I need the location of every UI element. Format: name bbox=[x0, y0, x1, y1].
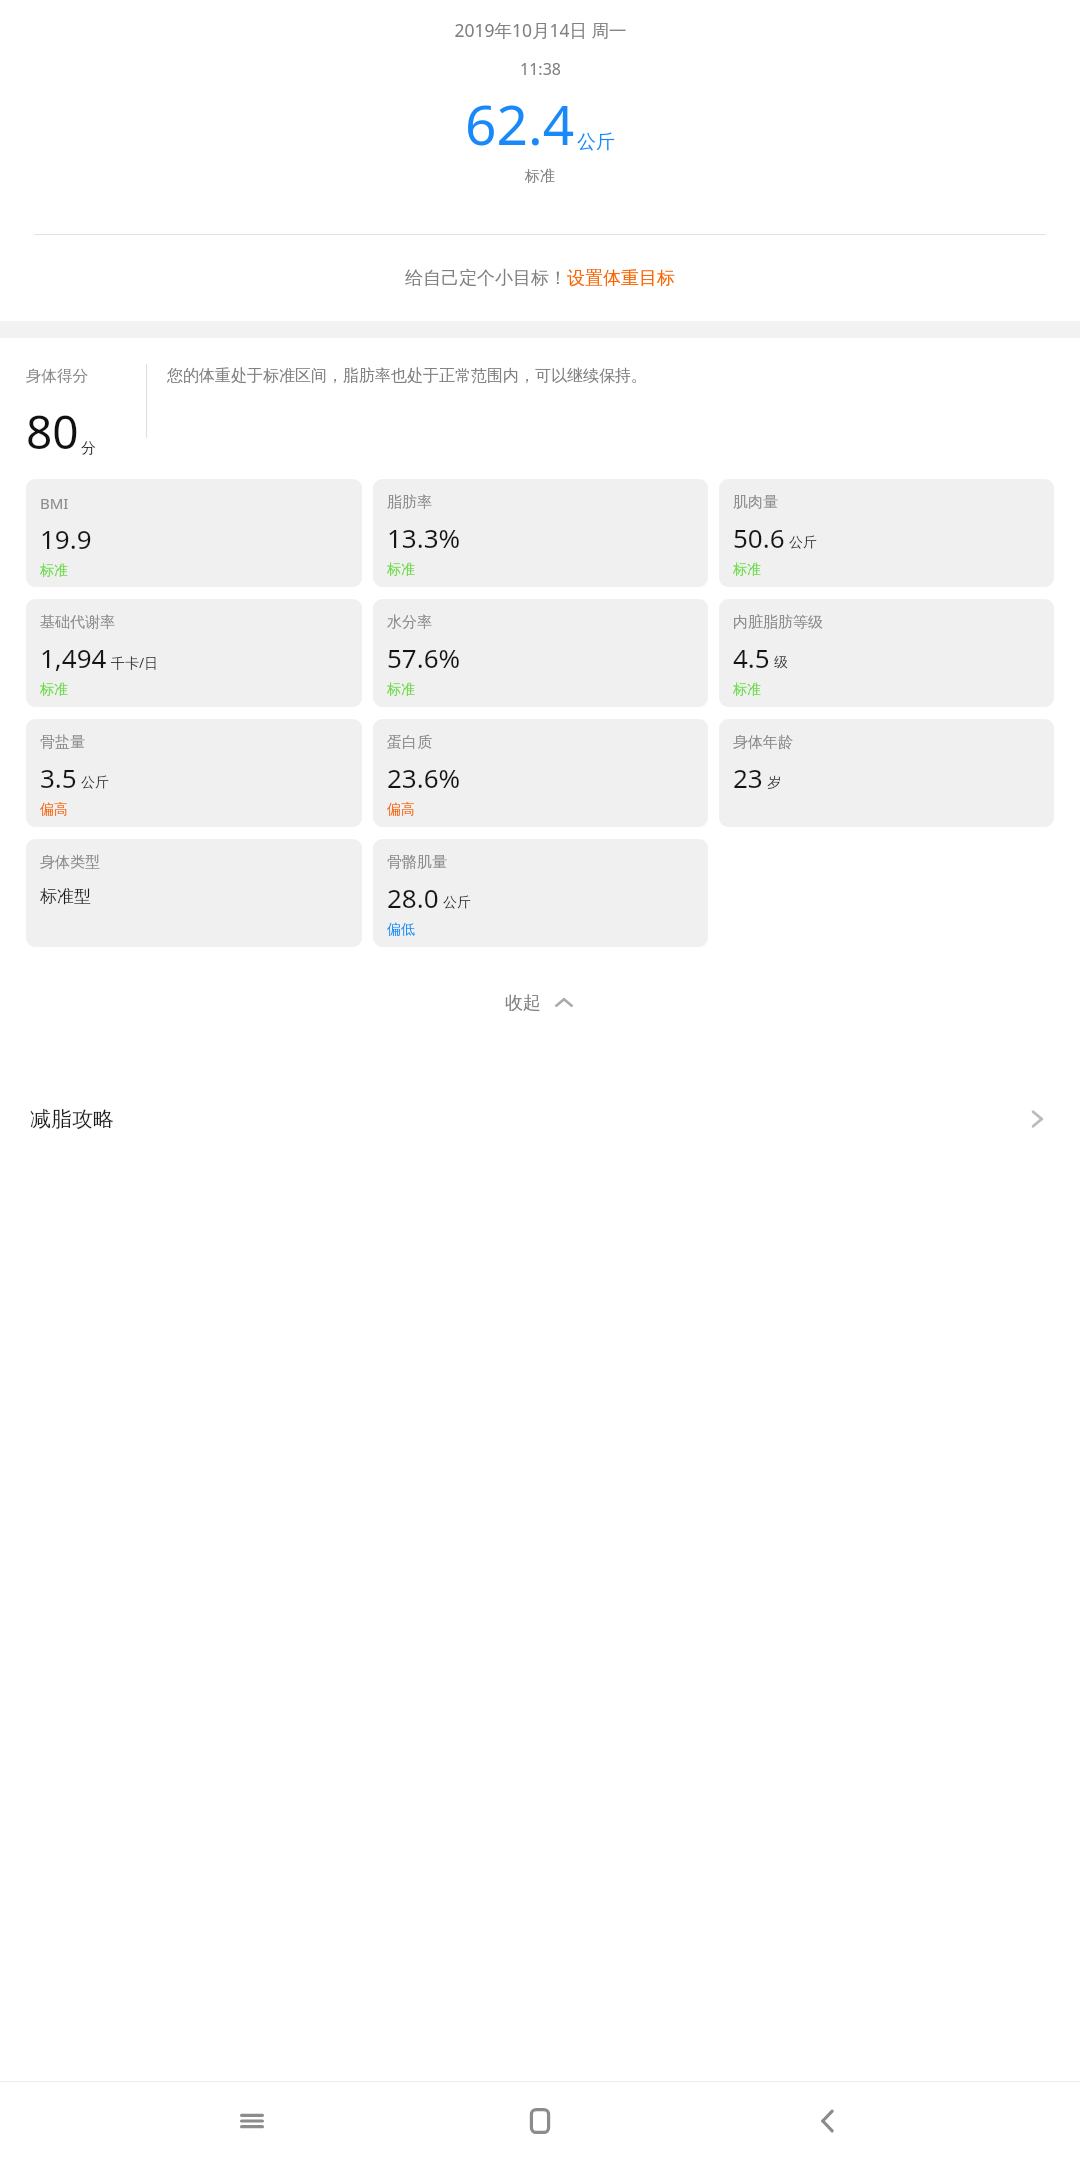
staticText: 标准 bbox=[525, 167, 555, 186]
staticText: 水分率 bbox=[387, 613, 432, 632]
staticText: 标准 bbox=[387, 681, 415, 699]
staticText: 分 bbox=[81, 439, 96, 458]
staticText: 公斤 bbox=[81, 774, 109, 792]
staticText: 身体得分 bbox=[26, 366, 88, 386]
button[interactable]: 给自己定个小目标！ bbox=[0, 235, 1080, 321]
staticText: 骨盐量 bbox=[40, 733, 85, 752]
button[interactable]: 脂肪率 bbox=[373, 479, 708, 587]
staticText: 3.5 bbox=[40, 760, 77, 795]
button[interactable]: 身体类型 bbox=[26, 839, 362, 947]
button[interactable]: Back bbox=[792, 2085, 864, 2157]
staticText: 4.5 bbox=[733, 640, 770, 675]
button[interactable]: 身体年龄 bbox=[719, 719, 1054, 827]
button[interactable]: 减脂攻略 bbox=[0, 1071, 1080, 1167]
staticText: 1,494 bbox=[40, 640, 107, 675]
staticText: 减脂攻略 bbox=[30, 1106, 114, 1132]
staticText: 身体类型 bbox=[40, 853, 100, 872]
button[interactable]: 收起 bbox=[0, 975, 1080, 1031]
staticText: 13.3% bbox=[387, 520, 461, 555]
staticText: 千卡/日 bbox=[111, 653, 159, 672]
staticText: 设置体重目标 bbox=[567, 267, 675, 290]
staticText: 偏高 bbox=[40, 801, 68, 819]
staticText: 19.9 bbox=[40, 521, 92, 556]
staticText: 岁 bbox=[767, 774, 781, 792]
staticText: 标准 bbox=[40, 681, 68, 699]
staticText: 公斤 bbox=[577, 130, 615, 154]
button[interactable]: BMI bbox=[26, 479, 362, 587]
staticText: 内脏脂肪等级 bbox=[733, 613, 823, 632]
button[interactable]: 蛋白质 bbox=[373, 719, 708, 827]
staticText: 2019年10月14日 周一 bbox=[454, 18, 627, 42]
button[interactable]: Home bbox=[504, 2085, 576, 2157]
staticText: 标准型 bbox=[40, 886, 91, 907]
staticText: BMI bbox=[40, 493, 69, 513]
button[interactable]: 骨盐量 bbox=[26, 719, 362, 827]
button[interactable]: Recent apps bbox=[216, 2085, 288, 2157]
staticText: 骨骼肌量 bbox=[387, 853, 447, 872]
staticText: 标准 bbox=[733, 561, 761, 579]
staticText: 身体年龄 bbox=[733, 733, 793, 752]
staticText: 公斤 bbox=[789, 534, 817, 552]
staticText: 57.6% bbox=[387, 640, 461, 675]
staticText: 偏低 bbox=[387, 921, 415, 939]
staticText: 50.6 bbox=[733, 520, 785, 555]
staticText: 收起 bbox=[505, 992, 541, 1015]
button[interactable]: 基础代谢率 bbox=[26, 599, 362, 707]
button[interactable]: 水分率 bbox=[373, 599, 708, 707]
staticText: 23 bbox=[733, 760, 763, 795]
button[interactable]: 内脏脂肪等级 bbox=[719, 599, 1054, 707]
staticText: 标准 bbox=[733, 681, 761, 699]
staticText: 您的体重处于标准区间，脂肪率也处于正常范围内，可以继续保持。 bbox=[167, 366, 647, 386]
staticText: 11:38 bbox=[520, 58, 561, 80]
staticText: 28.0 bbox=[387, 880, 439, 915]
staticText: 基础代谢率 bbox=[40, 613, 115, 632]
staticText: 标准 bbox=[387, 561, 415, 579]
button[interactable]: 肌肉量 bbox=[719, 479, 1054, 587]
staticText: 肌肉量 bbox=[733, 493, 778, 512]
staticText: 62.4 bbox=[465, 86, 575, 161]
staticText: 偏高 bbox=[387, 801, 415, 819]
staticText: 23.6% bbox=[387, 760, 461, 795]
staticText: 蛋白质 bbox=[387, 733, 432, 752]
staticText: 级 bbox=[774, 654, 788, 672]
staticText: 给自己定个小目标！ bbox=[405, 267, 567, 290]
staticText: 脂肪率 bbox=[387, 493, 432, 512]
staticText: 80 bbox=[26, 400, 79, 463]
staticText: 标准 bbox=[40, 562, 68, 580]
staticText: 公斤 bbox=[443, 894, 471, 912]
button[interactable]: 骨骼肌量 bbox=[373, 839, 708, 947]
